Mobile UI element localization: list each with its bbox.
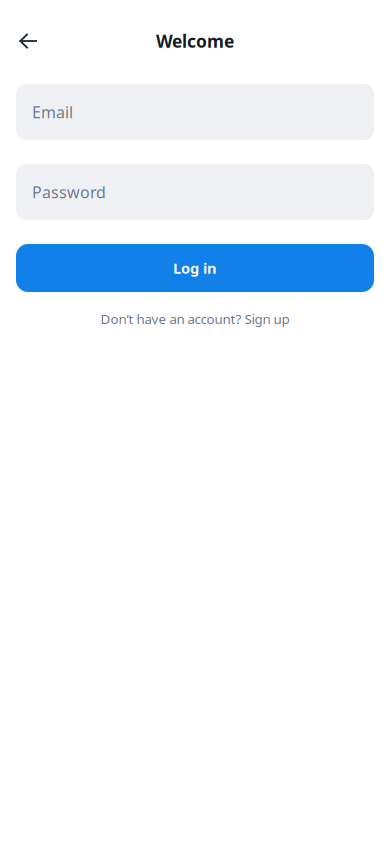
button[interactable]: Log in: [16, 244, 374, 292]
staticText: Email: [32, 101, 73, 123]
staticText: Password: [32, 181, 106, 203]
button[interactable]: Email: [16, 84, 374, 140]
button[interactable]: Don’t have an account? Sign up: [84, 292, 305, 340]
staticText: Log in: [173, 258, 217, 278]
staticText: Don’t have an account? Sign up: [100, 310, 289, 328]
button[interactable]: Password: [16, 164, 374, 220]
staticText: Welcome: [156, 29, 234, 52]
button[interactable]: Back: [6, 19, 50, 63]
